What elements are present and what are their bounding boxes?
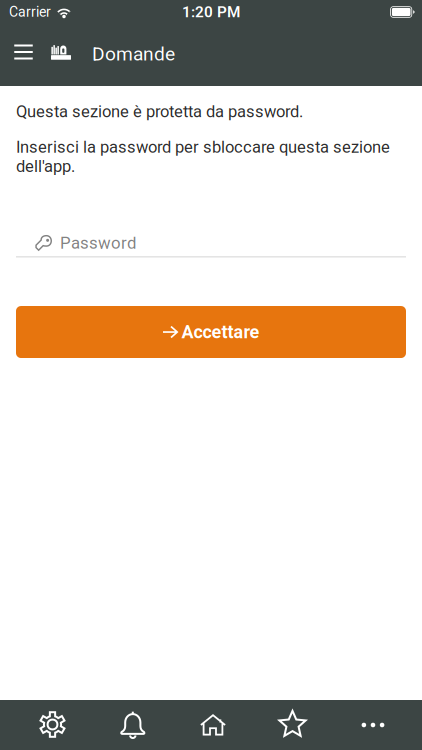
staticText: 1:20 PM (182, 3, 240, 21)
staticText: Questa sezione è protetta da password. (16, 102, 303, 121)
button[interactable]: Notifications (93, 700, 173, 750)
staticText: Domande (92, 43, 175, 65)
button[interactable]: Menu (5, 24, 42, 80)
button[interactable]: More (333, 700, 413, 750)
button[interactable]: Settings (13, 700, 93, 750)
button[interactable]: Accettare (16, 306, 406, 358)
button[interactable]: Home (173, 700, 253, 750)
button[interactable]: App logo (42, 24, 80, 80)
button[interactable]: Favorites (253, 700, 333, 750)
staticText: Password (60, 233, 136, 253)
staticText: Carrier (9, 4, 51, 20)
staticText: Accettare (181, 321, 259, 343)
staticText: Inserisci la password per sbloccare ques… (16, 137, 390, 176)
